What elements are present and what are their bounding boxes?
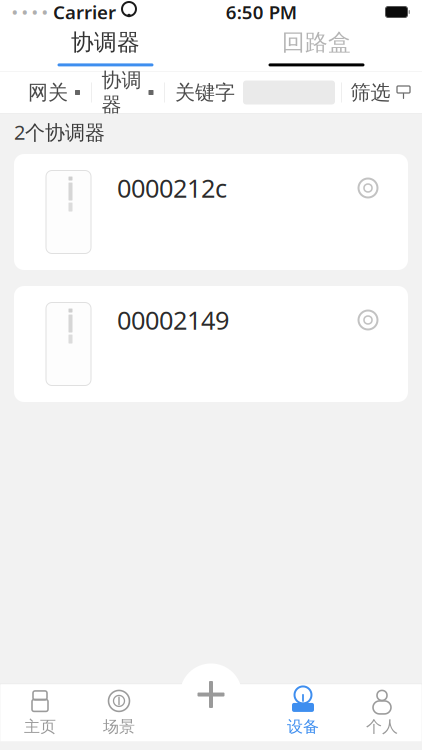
button[interactable]: 回路盒 (211, 24, 422, 71)
staticText: 协调器 (71, 29, 140, 56)
button[interactable]: 关键字输入框 (235, 80, 335, 104)
staticText: 6:50 PM (226, 0, 297, 24)
staticText: 0000212c (117, 171, 227, 205)
staticText: 00002149 (117, 303, 229, 337)
staticText: 2个协调器 (14, 119, 105, 145)
button[interactable]: 网关 (18, 71, 91, 113)
staticText: 个人 (366, 717, 398, 737)
button[interactable]: 主页 (0, 684, 79, 741)
staticText: Carrier (48, 0, 116, 24)
button[interactable]: 协调器 (91, 71, 164, 113)
staticText: 主页 (24, 717, 56, 737)
staticText: • • • • (12, 2, 48, 22)
button[interactable]: 0000212c (14, 154, 408, 270)
button[interactable]: 00002149 (14, 286, 408, 402)
staticText: 设备 (287, 717, 319, 737)
button[interactable]: 添加设备 (180, 663, 242, 725)
staticText: 网关 (28, 80, 68, 105)
staticText: 关键字 (175, 80, 235, 105)
staticText: 场景 (103, 717, 135, 737)
staticText: 回路盒 (282, 29, 351, 56)
staticText: 筛选 (350, 80, 390, 105)
button[interactable]: 场景 (79, 684, 158, 741)
button[interactable]: 协调器 (0, 24, 211, 71)
button[interactable]: 设备 (263, 684, 342, 741)
button[interactable]: 筛选 (341, 71, 419, 113)
button[interactable]: 个人 (342, 684, 421, 741)
staticText: 协调器 (101, 68, 141, 117)
